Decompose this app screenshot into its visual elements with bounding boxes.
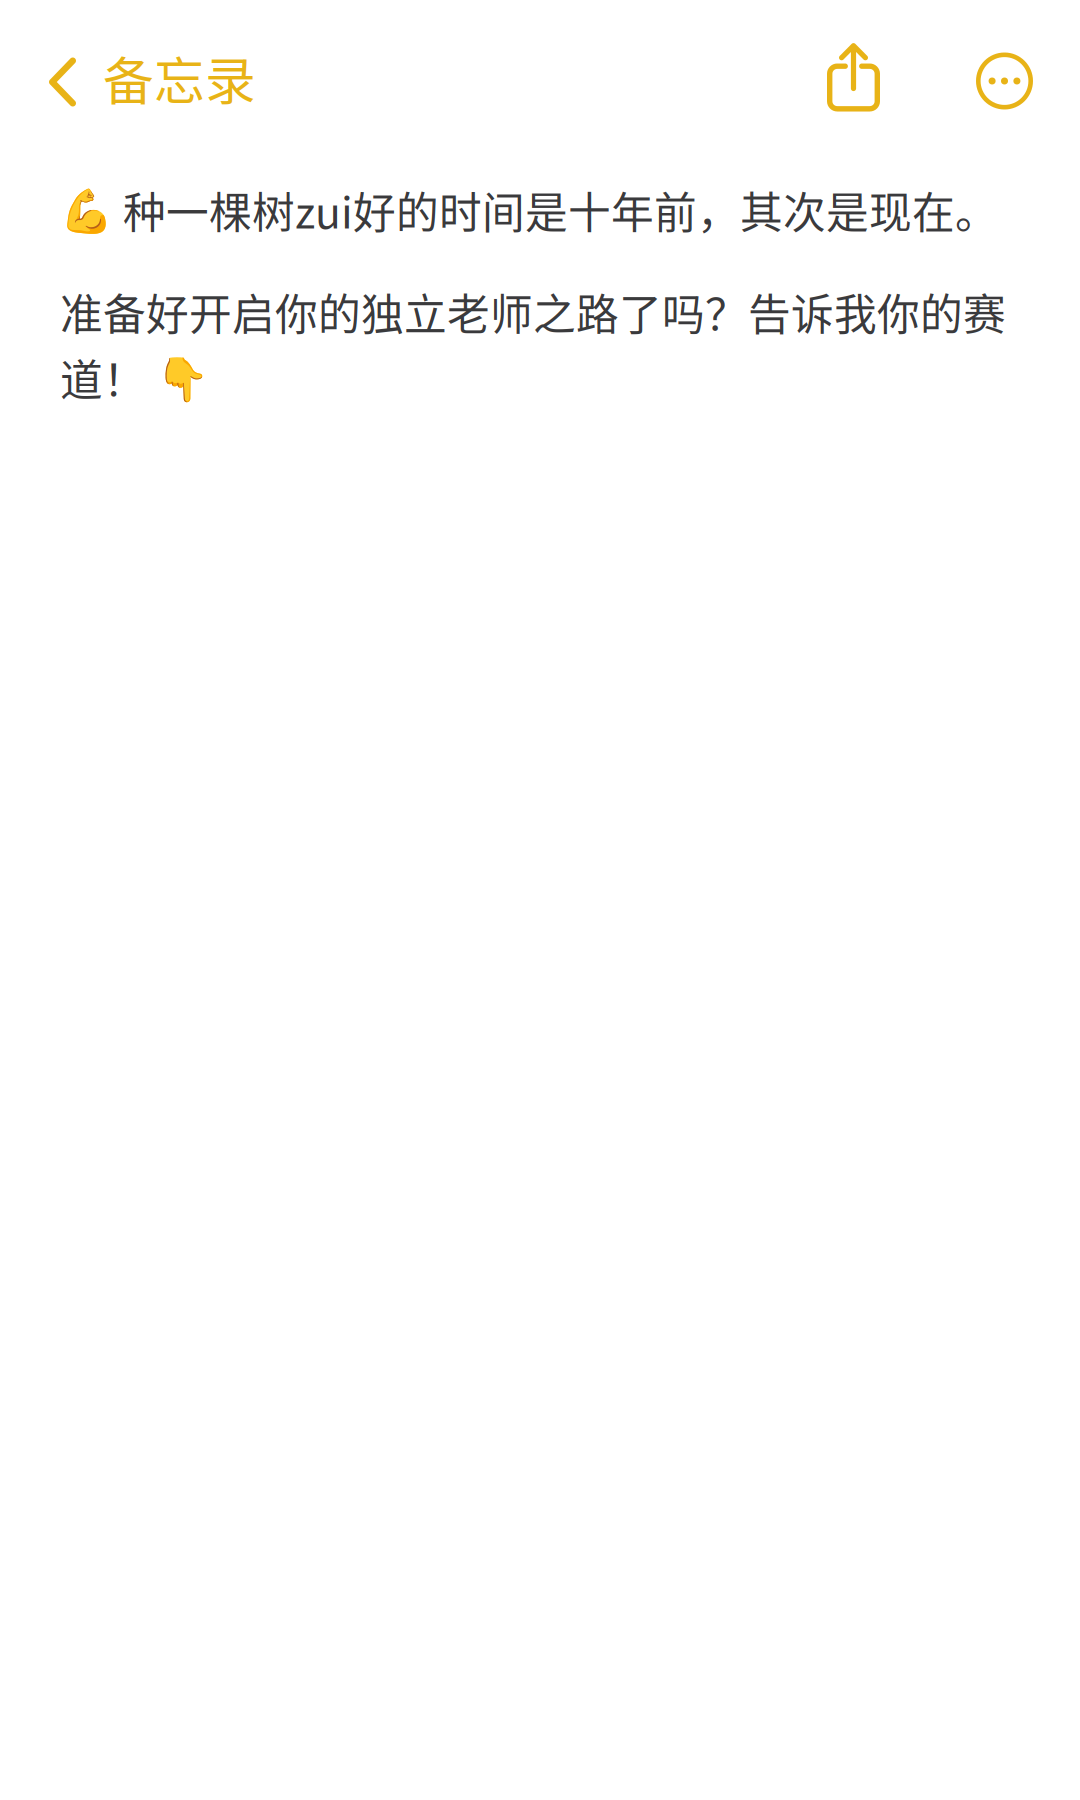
staticText: 备忘录 (103, 41, 256, 115)
button[interactable]: 更多 (930, 0, 1080, 146)
staticText: 准备好开启你的独立老师之路了吗？告诉我你的赛道！ 👇 (60, 281, 1006, 408)
button[interactable]: 返回 备忘录 (0, 0, 276, 146)
button[interactable]: 分享 (826, 0, 930, 146)
staticText: 💪 种一棵树zui好的时间是十年前，其次是现在。 (60, 179, 998, 241)
